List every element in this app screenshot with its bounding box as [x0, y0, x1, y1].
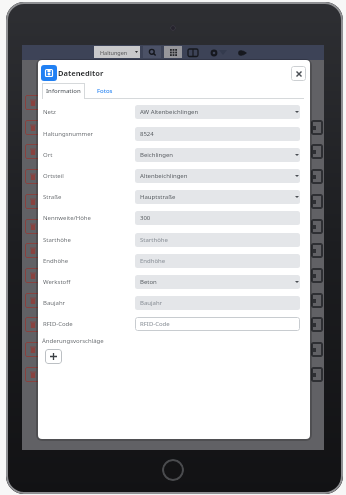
staticText: 300 — [140, 214, 151, 222]
button[interactable] — [209, 48, 219, 57]
staticText: Haltungsnummer — [43, 130, 94, 138]
staticText: Änderungsvorschläge — [42, 337, 104, 345]
staticText: Ort — [43, 151, 53, 159]
staticText: Baujahr — [140, 299, 163, 307]
staticText: Ortsteil — [43, 172, 64, 180]
staticText: Straße — [43, 193, 62, 201]
button[interactable]: Endhöhe — [135, 254, 300, 268]
staticText: Starthöhe — [43, 236, 71, 244]
button[interactable] — [162, 459, 184, 481]
staticText: Nennweite/Höhe — [43, 214, 91, 222]
button[interactable]: Baujahr — [135, 296, 300, 310]
button[interactable]: Information — [42, 83, 85, 99]
staticText: 8524 — [140, 130, 154, 138]
staticText: Hauptstraße — [140, 193, 176, 201]
button[interactable]: Beichlingen — [135, 148, 300, 162]
button[interactable] — [187, 48, 199, 57]
staticText: RFID-Code — [43, 320, 73, 328]
button[interactable]: Starthöhe — [135, 233, 300, 247]
staticText: AW Altenbeichlingen — [140, 108, 199, 116]
button[interactable] — [143, 46, 161, 58]
button[interactable]: RFID-Code — [135, 317, 300, 331]
button[interactable]: Hauptstraße — [135, 190, 300, 204]
button[interactable] — [41, 65, 57, 81]
staticText: Endhöhe — [140, 257, 166, 265]
staticText: Fotos — [97, 87, 113, 95]
staticText: Altenbeichlingen — [140, 172, 188, 180]
staticText: Beton — [140, 278, 157, 286]
button[interactable] — [164, 46, 182, 58]
staticText: Baujahr — [43, 299, 66, 307]
staticText: RFID-Code — [140, 320, 170, 328]
button[interactable]: Haltungen — [94, 46, 140, 58]
staticText: Information — [46, 87, 81, 95]
staticText: Dateneditor — [58, 68, 104, 78]
button[interactable] — [291, 66, 306, 81]
staticText: Beichlingen — [140, 151, 174, 159]
button[interactable]: 300 — [135, 211, 300, 225]
staticText: Endhöhe — [43, 257, 69, 265]
button[interactable] — [237, 48, 248, 57]
button[interactable]: AW Altenbeichlingen — [135, 105, 300, 119]
button[interactable]: Beton — [135, 275, 300, 289]
staticText: Netz — [43, 108, 56, 116]
staticText: Haltungen — [100, 49, 128, 56]
staticText: Werkstoff — [43, 278, 71, 286]
button[interactable]: Altenbeichlingen — [135, 169, 300, 183]
button[interactable]: 8524 — [135, 127, 300, 141]
button[interactable]: Fotos — [95, 83, 115, 99]
staticText: Starthöhe — [140, 236, 168, 244]
button[interactable] — [45, 349, 62, 364]
